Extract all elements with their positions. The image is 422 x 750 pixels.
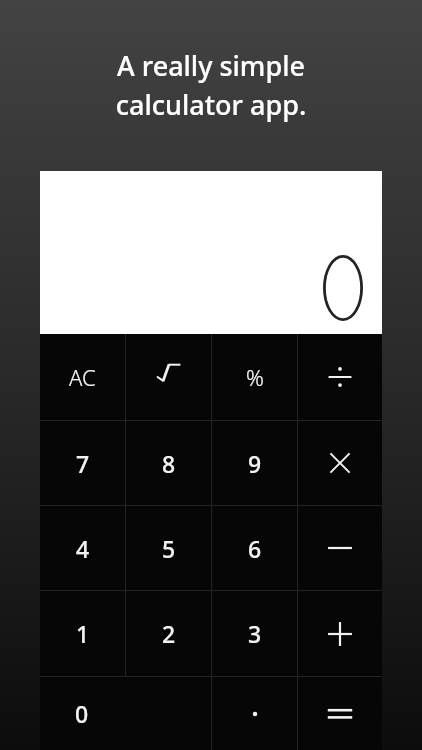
button[interactable]: 7 bbox=[40, 421, 125, 505]
button[interactable]: Subtract bbox=[298, 506, 382, 590]
button[interactable]: 6 bbox=[212, 506, 297, 590]
staticText: AC bbox=[69, 362, 96, 392]
staticText: 6 bbox=[248, 533, 262, 564]
button[interactable]: 0 bbox=[40, 677, 211, 750]
button[interactable]: Multiply bbox=[298, 421, 382, 505]
button[interactable]: Divide bbox=[298, 334, 382, 420]
button[interactable]: Decimal point bbox=[212, 677, 297, 750]
button[interactable]: Square root bbox=[126, 334, 211, 420]
button[interactable]: 4 bbox=[40, 506, 125, 590]
staticText: 4 bbox=[76, 533, 90, 564]
staticText: A really simple calculator app. bbox=[0, 47, 422, 123]
staticText: 5 bbox=[162, 533, 176, 564]
staticText: 9 bbox=[248, 448, 262, 479]
staticText: 1 bbox=[76, 618, 90, 649]
staticText: 7 bbox=[76, 448, 90, 479]
staticText: 0 bbox=[75, 698, 89, 729]
button[interactable]: 2 bbox=[126, 591, 211, 676]
button[interactable]: 9 bbox=[212, 421, 297, 505]
staticText: 2 bbox=[162, 618, 176, 649]
staticText: % bbox=[246, 362, 264, 392]
button[interactable]: 8 bbox=[126, 421, 211, 505]
staticText: 3 bbox=[248, 618, 262, 649]
button[interactable]: % bbox=[212, 334, 297, 420]
button[interactable]: Equals bbox=[298, 677, 382, 750]
button[interactable]: 5 bbox=[126, 506, 211, 590]
button[interactable]: AC bbox=[40, 334, 125, 420]
staticText: 8 bbox=[162, 448, 176, 479]
button[interactable]: 3 bbox=[212, 591, 297, 676]
button[interactable]: 1 bbox=[40, 591, 125, 676]
button[interactable]: Add bbox=[298, 591, 382, 676]
